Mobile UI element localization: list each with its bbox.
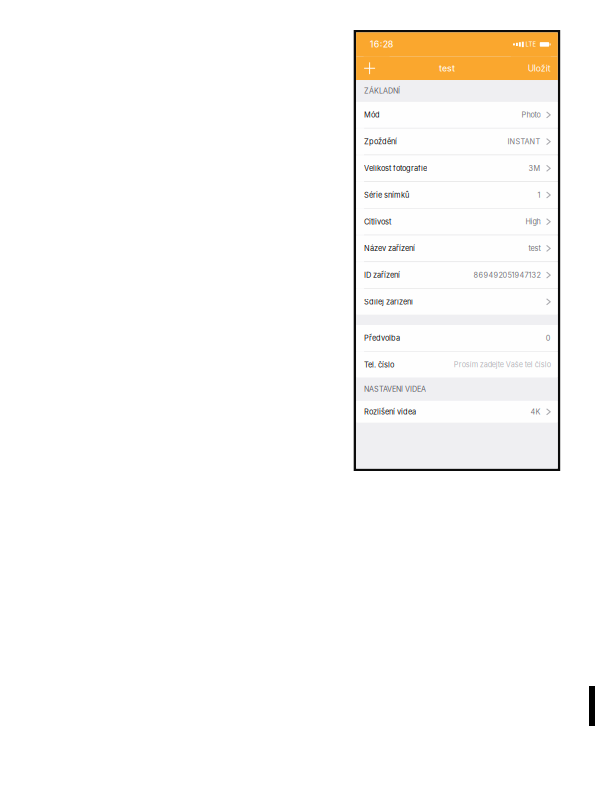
staticText: 16:28	[370, 39, 394, 50]
staticText: Citlivost	[364, 217, 391, 226]
staticText: test	[528, 244, 540, 253]
staticText: 0	[546, 334, 551, 342]
staticText: Rozlišení videa	[364, 407, 416, 416]
staticText: Prosím zadejte Vaše tel číslo	[454, 360, 551, 369]
staticText: Velikost fotografie	[364, 164, 427, 173]
staticText: Photo	[521, 110, 540, 119]
button[interactable]: Název zařízení	[356, 235, 558, 261]
button[interactable]: Uložit	[511, 56, 551, 80]
staticText: 869492051947132	[473, 271, 540, 280]
staticText: Uložit	[528, 63, 551, 73]
button[interactable]: Add	[364, 56, 390, 80]
staticText: Série snímků	[364, 190, 409, 199]
staticText: ZÁKLADNÍ	[364, 87, 400, 95]
button[interactable]: Tel. číslo	[356, 352, 558, 378]
staticText: LTE	[526, 41, 537, 48]
button[interactable]: Rozlišení videa	[356, 401, 558, 423]
staticText: Tel. číslo	[364, 360, 394, 369]
staticText: Předvolba	[364, 333, 400, 342]
button[interactable]: Zpoždění	[356, 129, 558, 155]
staticText: High	[525, 217, 540, 226]
staticText: Název zařízení	[364, 244, 415, 253]
button[interactable]: Velikost fotografie	[356, 155, 558, 181]
staticText: 4K	[530, 407, 540, 416]
staticText: 1	[537, 191, 540, 199]
button[interactable]: Sdílej zařízení	[356, 289, 558, 315]
staticText: NASTAVENÍ VIDEA	[364, 385, 426, 394]
staticText: 3M	[528, 164, 540, 173]
button[interactable]: ID zařízení	[356, 262, 558, 288]
staticText: INSTANT	[507, 137, 540, 146]
staticText: ID zařízení	[364, 271, 400, 280]
staticText: test	[439, 63, 455, 73]
staticText: Mód	[364, 110, 380, 119]
button[interactable]: Předvolba	[356, 325, 558, 351]
button[interactable]: Mód	[356, 102, 558, 128]
button[interactable]: Série snímků	[356, 182, 558, 208]
staticText: Zpoždění	[364, 137, 397, 146]
staticText: Sdílej zařízení	[364, 297, 413, 306]
button[interactable]: Citlivost	[356, 209, 558, 235]
